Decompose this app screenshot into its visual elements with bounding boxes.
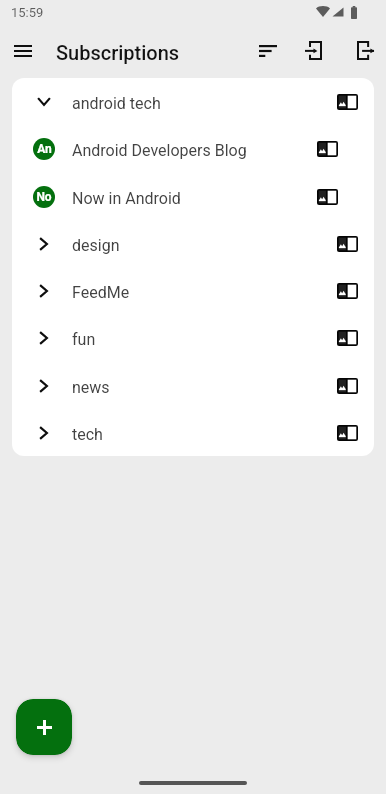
staticText: tech: [72, 425, 103, 444]
staticText: FeedMe: [72, 283, 130, 302]
button[interactable]: android tech: [12, 78, 374, 125]
button[interactable]: fun: [12, 314, 374, 361]
staticText: 15:59: [11, 5, 44, 20]
button[interactable]: Import subscriptions: [288, 28, 336, 74]
button[interactable]: Open navigation drawer: [0, 28, 48, 74]
staticText: Subscriptions: [56, 41, 180, 64]
button[interactable]: Feed view options: [328, 125, 374, 172]
button[interactable]: news: [12, 362, 374, 409]
button[interactable]: Sort: [244, 28, 292, 74]
button[interactable]: An: [12, 125, 374, 172]
button[interactable]: Feed view options: [328, 362, 374, 409]
staticText: An: [37, 142, 52, 156]
button[interactable]: Add subscription: [16, 699, 72, 755]
button[interactable]: tech: [12, 409, 374, 456]
button[interactable]: Feed view options: [328, 314, 374, 361]
button[interactable]: Feed view options: [328, 409, 374, 456]
staticText: No: [36, 190, 52, 204]
staticText: fun: [72, 330, 96, 349]
staticText: Now in Android: [72, 189, 181, 208]
button[interactable]: design: [12, 220, 374, 267]
staticText: design: [72, 236, 120, 255]
button[interactable]: Feed view options: [328, 267, 374, 314]
button[interactable]: Feed view options: [328, 173, 374, 220]
button[interactable]: FeedMe: [12, 267, 374, 314]
staticText: news: [72, 378, 110, 397]
staticText: android tech: [72, 94, 161, 113]
staticText: Android Developers Blog: [72, 141, 247, 160]
button[interactable]: Feed view options: [328, 220, 374, 267]
button[interactable]: No: [12, 173, 374, 220]
button[interactable]: Export subscriptions: [341, 28, 386, 74]
button[interactable]: Feed view options: [328, 78, 374, 125]
